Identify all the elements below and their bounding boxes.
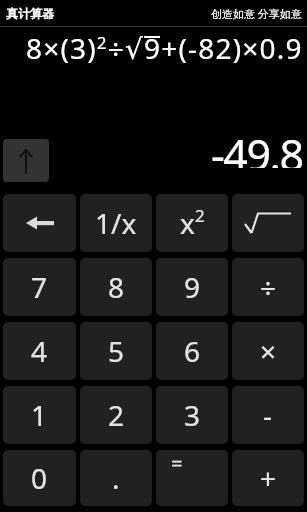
staticText: -49.8 xyxy=(211,125,303,168)
staticText: + xyxy=(260,459,277,497)
staticText: 6 xyxy=(184,332,201,370)
button[interactable]: . xyxy=(80,450,152,506)
button[interactable]: 1 xyxy=(3,386,76,444)
button[interactable]: 0 xyxy=(3,450,76,506)
button[interactable]: = xyxy=(156,450,228,506)
staticText: 9 xyxy=(184,268,201,306)
button[interactable]: x xyxy=(156,194,228,252)
button[interactable]: 5 xyxy=(80,322,152,380)
staticText: 5 xyxy=(108,332,125,370)
button[interactable]: 6 xyxy=(156,322,228,380)
button[interactable]: 4 xyxy=(3,322,76,380)
button[interactable] xyxy=(3,139,49,182)
button[interactable]: 3 xyxy=(156,386,228,444)
staticText: 8×(3)2÷√9+(-82)×0.9 xyxy=(26,29,303,64)
button[interactable]: 2 xyxy=(80,386,152,444)
button[interactable] xyxy=(3,194,76,252)
staticText: 1/x xyxy=(95,204,137,242)
staticText: - xyxy=(263,396,273,434)
staticText: 3 xyxy=(184,396,201,434)
button[interactable]: 1/x xyxy=(80,194,152,252)
staticText: 8 xyxy=(108,268,125,306)
staticText: ÷ xyxy=(260,268,277,306)
staticText: 2 xyxy=(108,396,125,434)
button[interactable] xyxy=(232,194,304,252)
button[interactable]: + xyxy=(232,450,304,506)
staticText: 2 xyxy=(195,204,205,227)
staticText: 1 xyxy=(31,396,48,434)
staticText: x xyxy=(180,204,195,242)
staticText: 真计算器 xyxy=(6,6,54,21)
button[interactable]: 7 xyxy=(3,258,76,316)
staticText: . xyxy=(112,459,120,497)
staticText: × xyxy=(260,332,277,370)
staticText: = xyxy=(171,450,183,477)
staticText: 4 xyxy=(31,332,48,370)
button[interactable]: 8 xyxy=(80,258,152,316)
staticText: 创造如意 分享如意 xyxy=(211,6,302,21)
button[interactable]: 9 xyxy=(156,258,228,316)
button[interactable]: × xyxy=(232,322,304,380)
button[interactable]: ÷ xyxy=(232,258,304,316)
staticText: 0 xyxy=(31,459,48,497)
staticText: 7 xyxy=(31,268,48,306)
button[interactable]: - xyxy=(232,386,304,444)
